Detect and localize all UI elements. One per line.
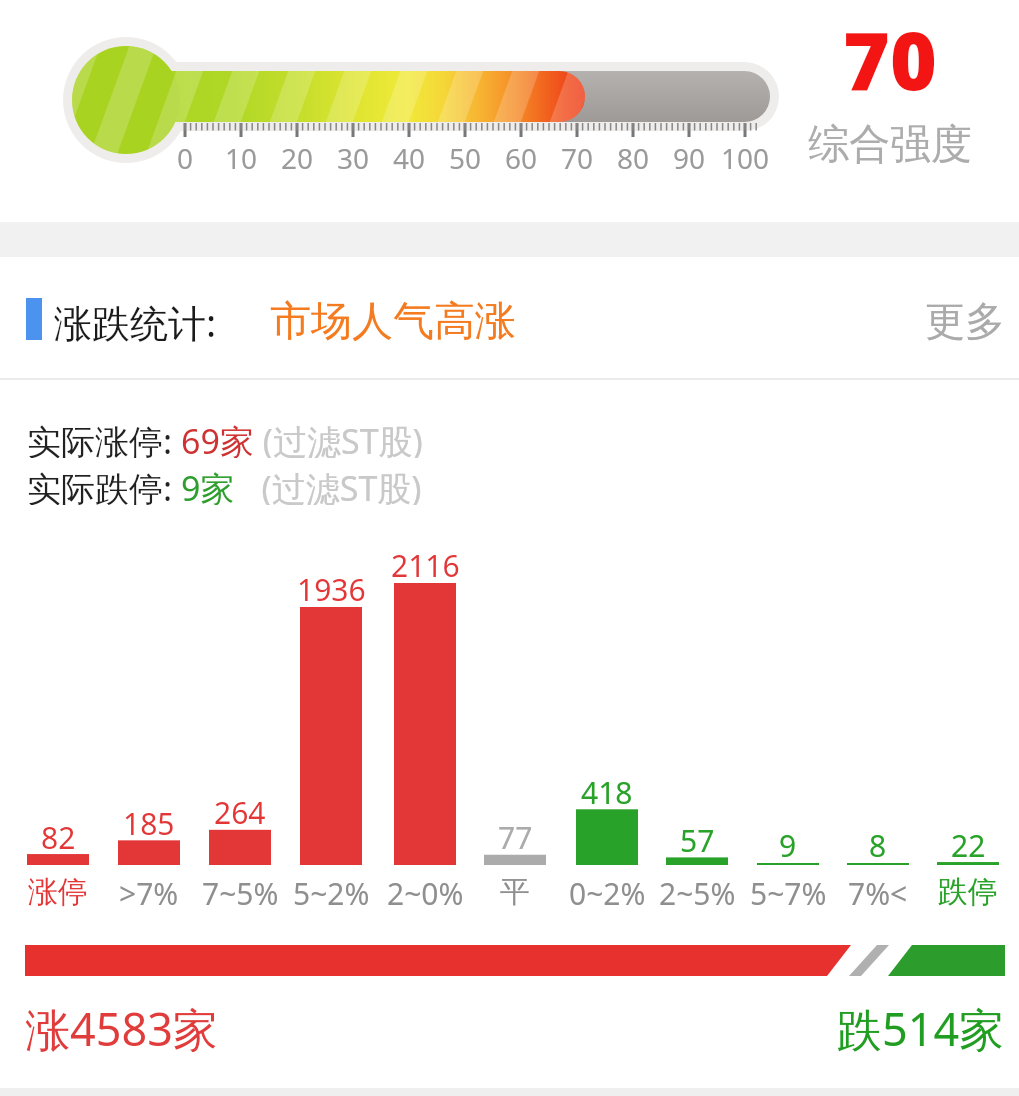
- staticText: 30: [337, 139, 370, 171]
- staticText: 更多: [925, 296, 1005, 344]
- staticText: 9: [779, 825, 797, 861]
- staticText: 实际涨停:: [27, 418, 181, 458]
- staticText: 90: [673, 139, 706, 171]
- staticText: 100: [721, 139, 770, 171]
- staticText: 9家: [181, 465, 235, 505]
- staticText: 1936: [297, 569, 366, 605]
- staticText: 5~2%: [293, 873, 370, 909]
- staticText: >7%: [119, 873, 179, 909]
- staticText: 市场人气高涨: [270, 296, 516, 344]
- staticText: 70: [561, 139, 594, 171]
- staticText: 跌停: [938, 873, 998, 909]
- staticText: 5~7%: [750, 873, 827, 909]
- staticText: 2116: [391, 545, 460, 581]
- staticText: 10: [225, 139, 258, 171]
- staticText: 185: [123, 803, 175, 839]
- staticText: 20: [281, 139, 314, 171]
- staticText: 8: [869, 825, 887, 861]
- staticText: 2~5%: [659, 873, 736, 909]
- staticText: 69家: [181, 418, 254, 458]
- staticText: 7%<: [848, 873, 908, 909]
- staticText: 综合强度: [808, 119, 972, 171]
- staticText: 涨4583家: [25, 998, 218, 1052]
- staticText: 50: [449, 139, 482, 171]
- staticText: 涨跌统计:: [54, 296, 217, 344]
- staticText: 70: [843, 4, 937, 96]
- staticText: 0: [177, 139, 194, 171]
- staticText: 60: [505, 139, 538, 171]
- staticText: 22: [951, 825, 986, 861]
- staticText: 0~2%: [569, 873, 646, 909]
- staticText: 40: [393, 139, 426, 171]
- staticText: 77: [498, 817, 533, 853]
- staticText: 平: [500, 873, 530, 909]
- button[interactable]: 涨跌统计:: [54, 296, 304, 344]
- staticText: 418: [581, 772, 633, 808]
- staticText: 2~0%: [387, 873, 464, 909]
- staticText: 57: [680, 820, 715, 856]
- staticText: 涨停: [28, 873, 88, 909]
- staticText: 82: [41, 817, 76, 853]
- button[interactable]: 更多: [900, 296, 1005, 344]
- staticText: 实际跌停:: [27, 465, 181, 505]
- staticText: 264: [214, 792, 266, 828]
- staticText: 跌514家: [837, 998, 1005, 1052]
- staticText: (过滤ST股): [254, 418, 423, 458]
- staticText: (过滤ST股): [235, 465, 422, 505]
- staticText: 80: [617, 139, 650, 171]
- staticText: 7~5%: [202, 873, 279, 909]
